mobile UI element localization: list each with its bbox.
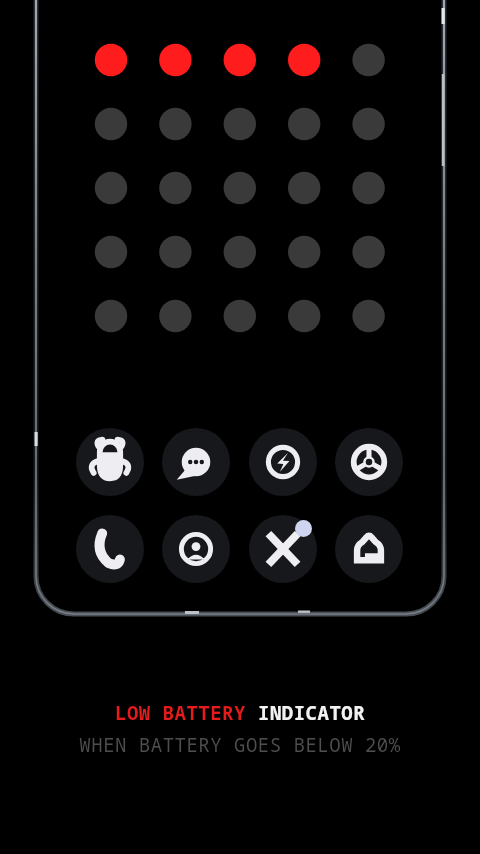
button[interactable]: Bug report — [76, 428, 144, 496]
button[interactable]: Chrome — [335, 428, 403, 496]
button[interactable]: Messages — [162, 428, 230, 496]
button[interactable]: Google Home — [335, 515, 403, 583]
staticText: LOW BATTERY — [115, 700, 258, 726]
staticText: INDICATOR — [258, 700, 366, 726]
button[interactable]: X — [249, 515, 317, 583]
staticText: WHEN BATTERY GOES BELOW 20% — [79, 732, 401, 758]
button[interactable]: Flash — [249, 428, 317, 496]
button[interactable]: Contacts — [162, 515, 230, 583]
button[interactable]: Phone — [76, 515, 144, 583]
